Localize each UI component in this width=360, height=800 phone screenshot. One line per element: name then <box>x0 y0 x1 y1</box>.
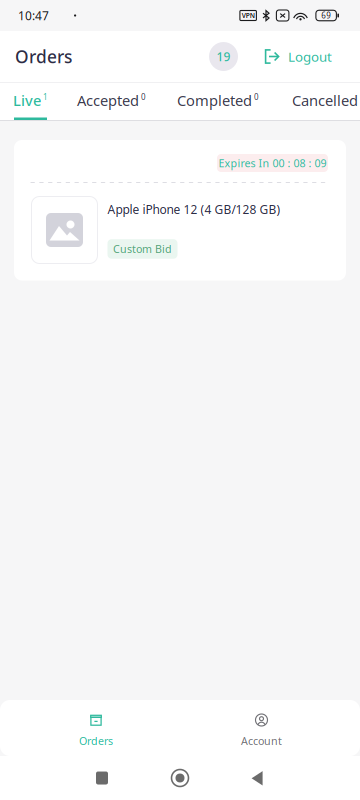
staticText: Apple iPhone 12 (4 GB/128 GB) <box>107 201 280 217</box>
staticText: 0 <box>254 91 259 102</box>
staticText: 69 <box>321 10 331 21</box>
staticText: 1 <box>43 91 48 102</box>
staticText: Live <box>13 90 41 110</box>
button[interactable]: Accepted <box>47 83 145 120</box>
staticText: Orders <box>15 45 72 68</box>
button[interactable]: Recent apps <box>0 756 134 800</box>
button[interactable]: Orders <box>0 700 192 756</box>
staticText: Cancelled <box>292 90 358 110</box>
staticText: Expires In 00 : 08 : 09 <box>218 156 326 170</box>
button[interactable]: Live <box>14 83 47 120</box>
staticText: Account <box>241 734 282 748</box>
button[interactable]: 19 <box>199 34 239 78</box>
staticText: Completed <box>177 90 252 110</box>
button[interactable]: Cancelled <box>258 83 360 120</box>
staticText: Orders <box>79 734 113 748</box>
button[interactable]: Home <box>134 756 212 800</box>
staticText: VPN <box>242 11 255 20</box>
button[interactable]: Completed <box>145 83 258 120</box>
button[interactable]: Account <box>192 700 331 756</box>
staticText: Custom Bid <box>113 242 172 256</box>
staticText: Logout <box>288 48 332 65</box>
staticText: 10:47 <box>18 7 49 23</box>
staticText: Accepted <box>77 90 139 110</box>
button[interactable]: Logout <box>239 34 360 78</box>
staticText: 19 <box>216 48 230 64</box>
button[interactable]: Back <box>212 756 289 800</box>
staticText: 0 <box>141 91 146 102</box>
button[interactable]: Expires In 00 : 08 : 09 <box>14 140 346 280</box>
